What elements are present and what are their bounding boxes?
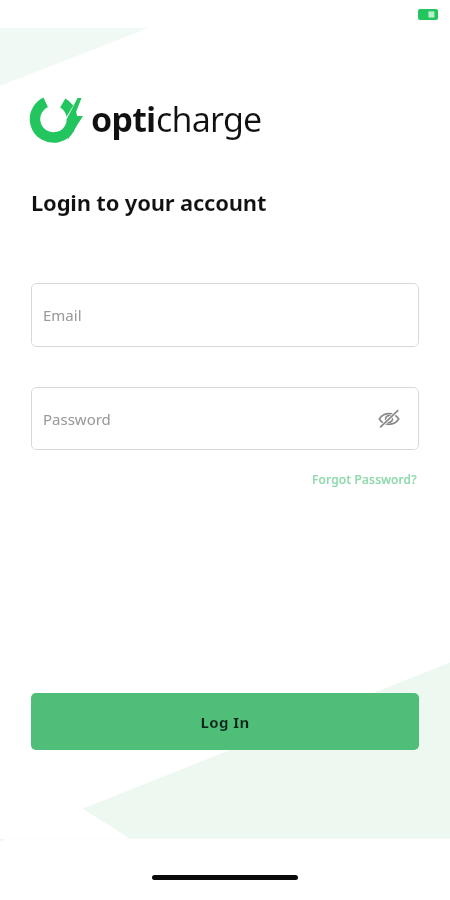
staticText: Forgot Password? <box>312 471 417 487</box>
staticText: opti <box>91 96 156 142</box>
staticText: Email <box>43 305 82 325</box>
staticText: Login to your account <box>31 187 267 217</box>
staticText: Password <box>43 409 111 429</box>
staticText: charge <box>156 96 262 142</box>
button[interactable]: Show password <box>376 406 402 432</box>
staticText: Log In <box>200 712 250 732</box>
button[interactable]: Password <box>31 387 419 450</box>
button[interactable]: Email <box>31 283 419 347</box>
button[interactable]: Forgot Password? <box>310 469 419 489</box>
button[interactable]: Log In <box>31 693 419 750</box>
